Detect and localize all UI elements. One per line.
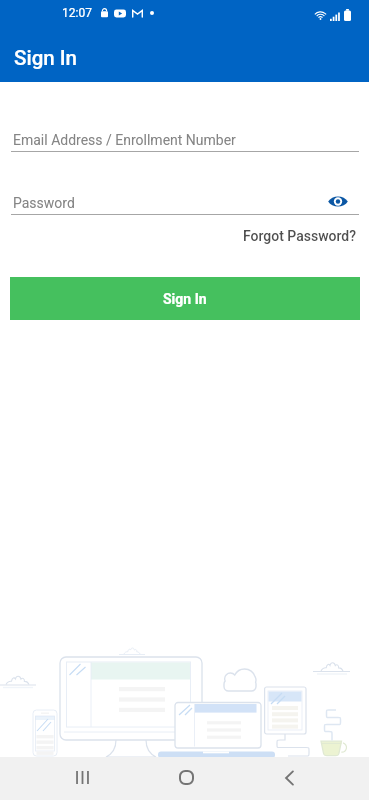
staticText: Email Address / Enrollment Number [13,132,236,148]
button[interactable]: Sign In [10,277,360,320]
button[interactable]: Back [267,756,311,799]
staticText: 12:07 [62,6,92,20]
staticText: Forgot Password? [243,228,357,244]
staticText: Sign In [163,291,207,307]
button[interactable]: Show password [325,188,351,214]
button[interactable]: Recents [60,756,104,799]
staticText: Sign In [14,46,77,70]
staticText: Password [13,195,75,211]
button[interactable]: Forgot Password? [239,225,361,247]
button[interactable]: Home [164,756,208,799]
